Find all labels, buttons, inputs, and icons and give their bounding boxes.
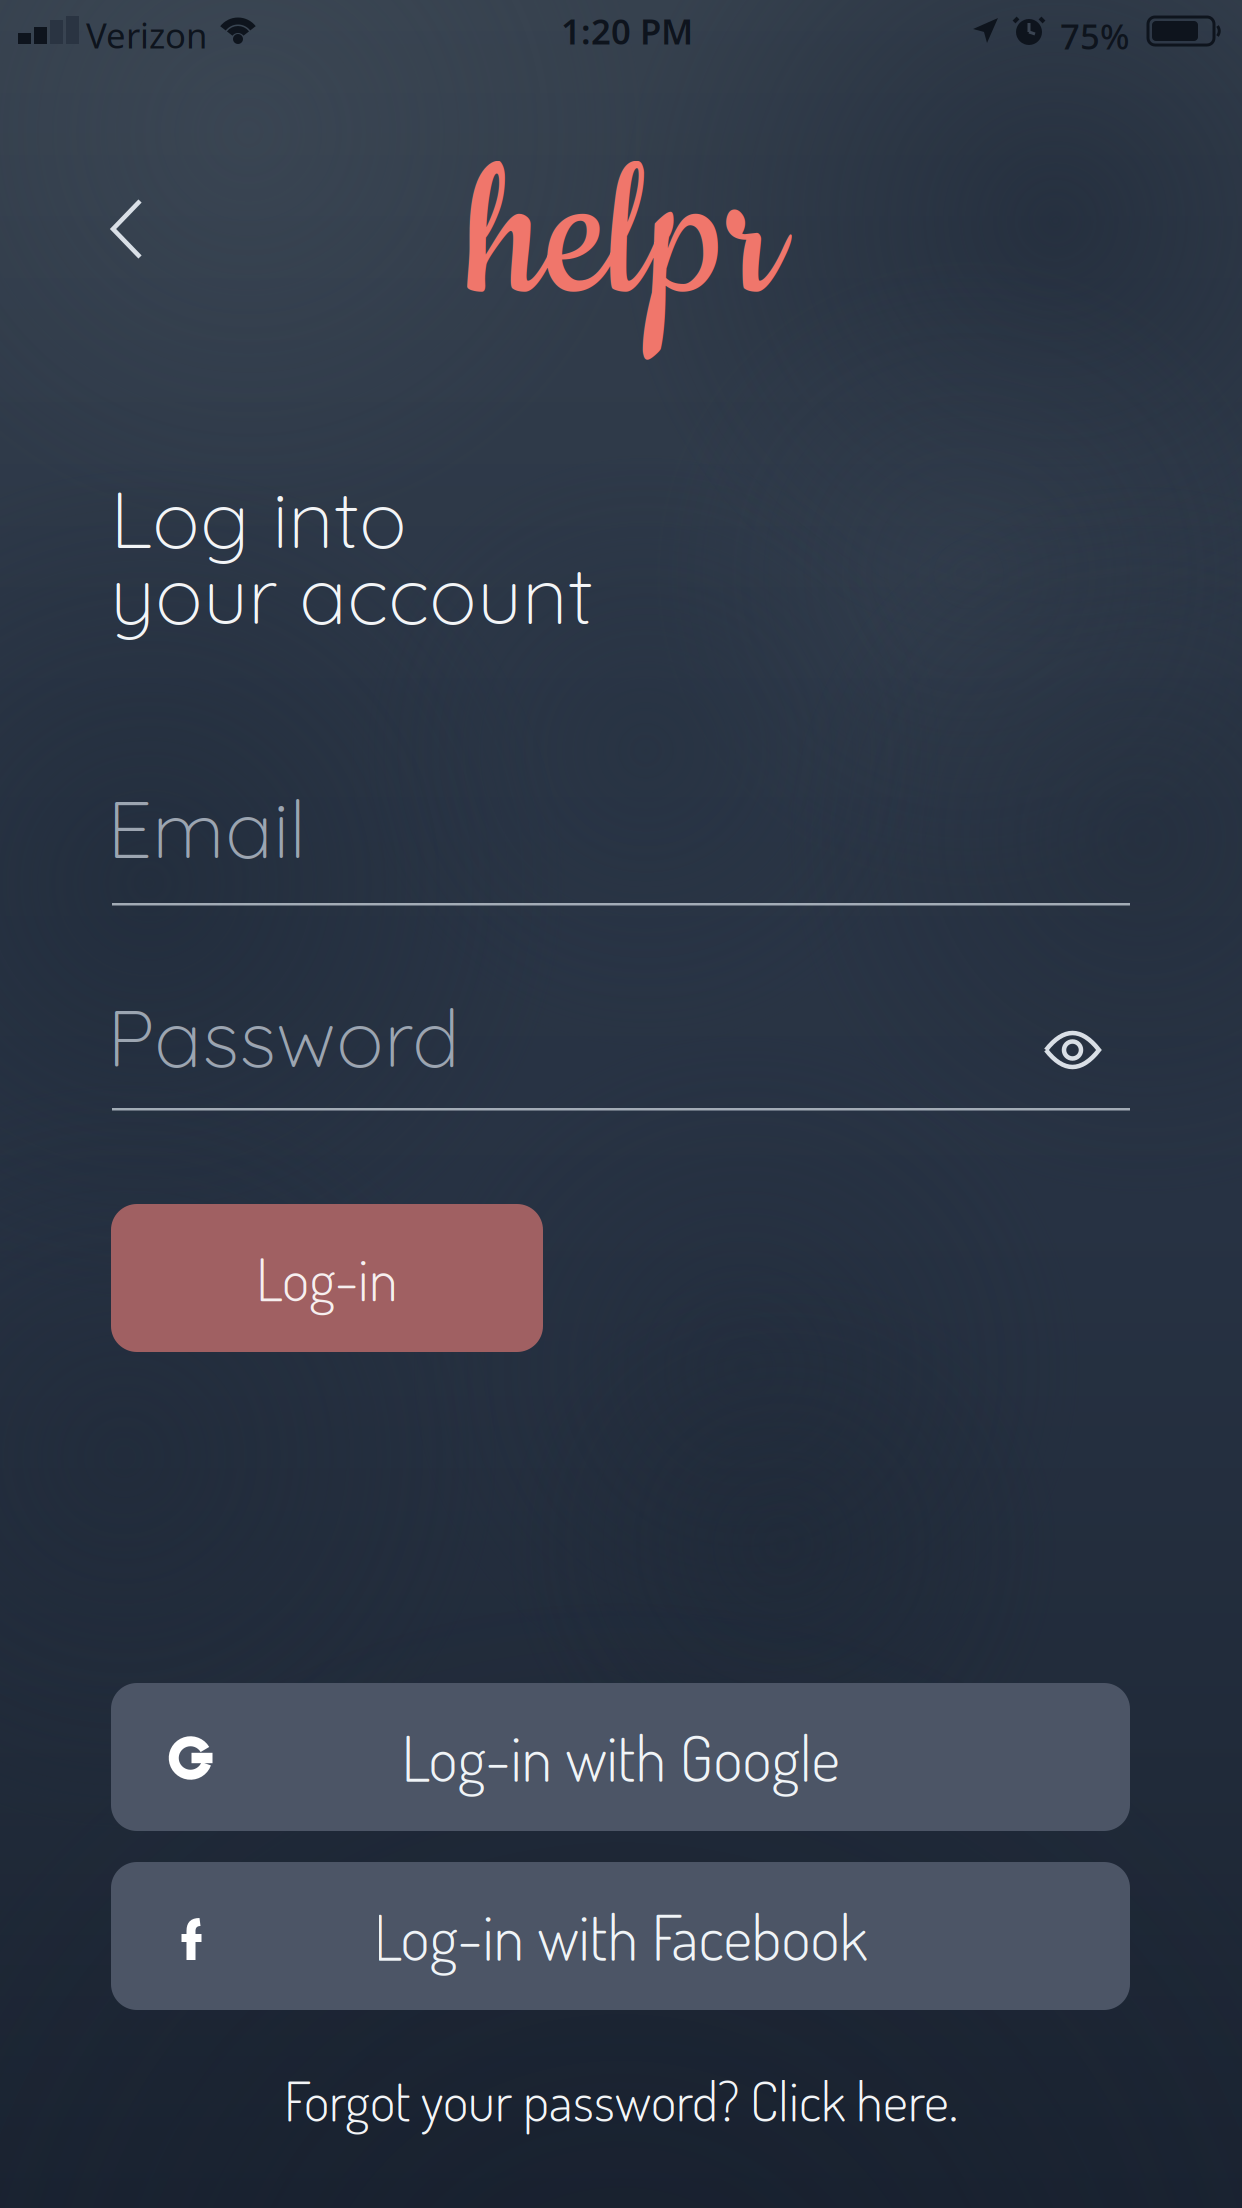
staticText: 75% (1060, 13, 1130, 59)
staticText: Log-in (256, 1241, 398, 1315)
staticText: your account (110, 544, 593, 644)
staticText: Forgot your password? Click here. (284, 2065, 958, 2135)
staticText: Verizon (86, 12, 207, 58)
staticText: Log into (110, 468, 407, 568)
staticText: Email (107, 778, 306, 878)
staticText: Password (107, 987, 460, 1087)
staticText: Log-in with Facebook (373, 1896, 867, 1976)
staticText: Log-in with Google (401, 1717, 839, 1797)
staticText: 1:20 PM (561, 8, 693, 54)
staticText: helpr (467, 120, 781, 360)
